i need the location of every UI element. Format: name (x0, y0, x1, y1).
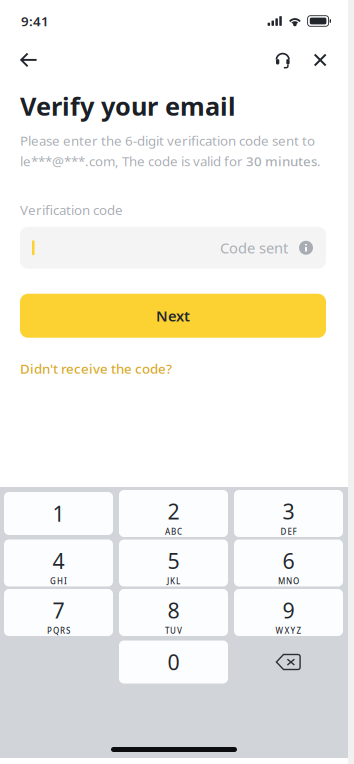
staticText: 4 (52, 546, 64, 575)
button[interactable]: Back (20, 45, 48, 75)
staticText: 3 (282, 497, 294, 525)
button[interactable]: Delete (234, 640, 343, 683)
staticText: 2 (167, 497, 179, 525)
button[interactable]: 6 (234, 541, 343, 584)
staticText: 8 (167, 596, 179, 624)
button[interactable]: 9 (234, 591, 343, 634)
button[interactable]: Next (20, 294, 326, 338)
staticText: T U V (165, 625, 182, 636)
button[interactable]: Close (305, 45, 327, 75)
staticText: 5 (167, 546, 179, 575)
button[interactable]: 7 (4, 591, 113, 634)
button[interactable]: 0 (119, 640, 228, 683)
staticText: Code sent (220, 238, 288, 257)
button[interactable]: 2 (119, 492, 228, 535)
button[interactable]: Customer support (270, 45, 296, 75)
staticText: 1 (52, 499, 64, 528)
staticText: 6 (282, 546, 294, 575)
button[interactable]: 5 (119, 541, 228, 584)
staticText: A B C (165, 526, 182, 537)
staticText: M N O (278, 576, 299, 586)
staticText: Didn't receive the code? (20, 360, 172, 377)
staticText: 7 (52, 596, 64, 624)
staticText: G H I (50, 576, 67, 586)
staticText: 9 (282, 596, 294, 624)
staticText: P Q R S (47, 625, 70, 636)
staticText: 9:41 (21, 12, 49, 30)
staticText: Please enter the 6-digit verification co… (20, 132, 321, 170)
staticText: D E F (280, 526, 296, 537)
button[interactable]: 1 (4, 492, 113, 535)
button[interactable]: 8 (119, 591, 228, 634)
staticText: J K L (167, 576, 180, 586)
staticText: W X Y Z (275, 625, 301, 636)
staticText: Verification code (20, 201, 123, 219)
button[interactable]: 4 (4, 541, 113, 584)
staticText: 0 (167, 648, 179, 676)
staticText: Next (156, 306, 190, 325)
button[interactable]: 3 (234, 492, 343, 535)
button[interactable]: Didn't receive the code? (20, 360, 172, 377)
staticText: Verify your email (20, 89, 236, 123)
